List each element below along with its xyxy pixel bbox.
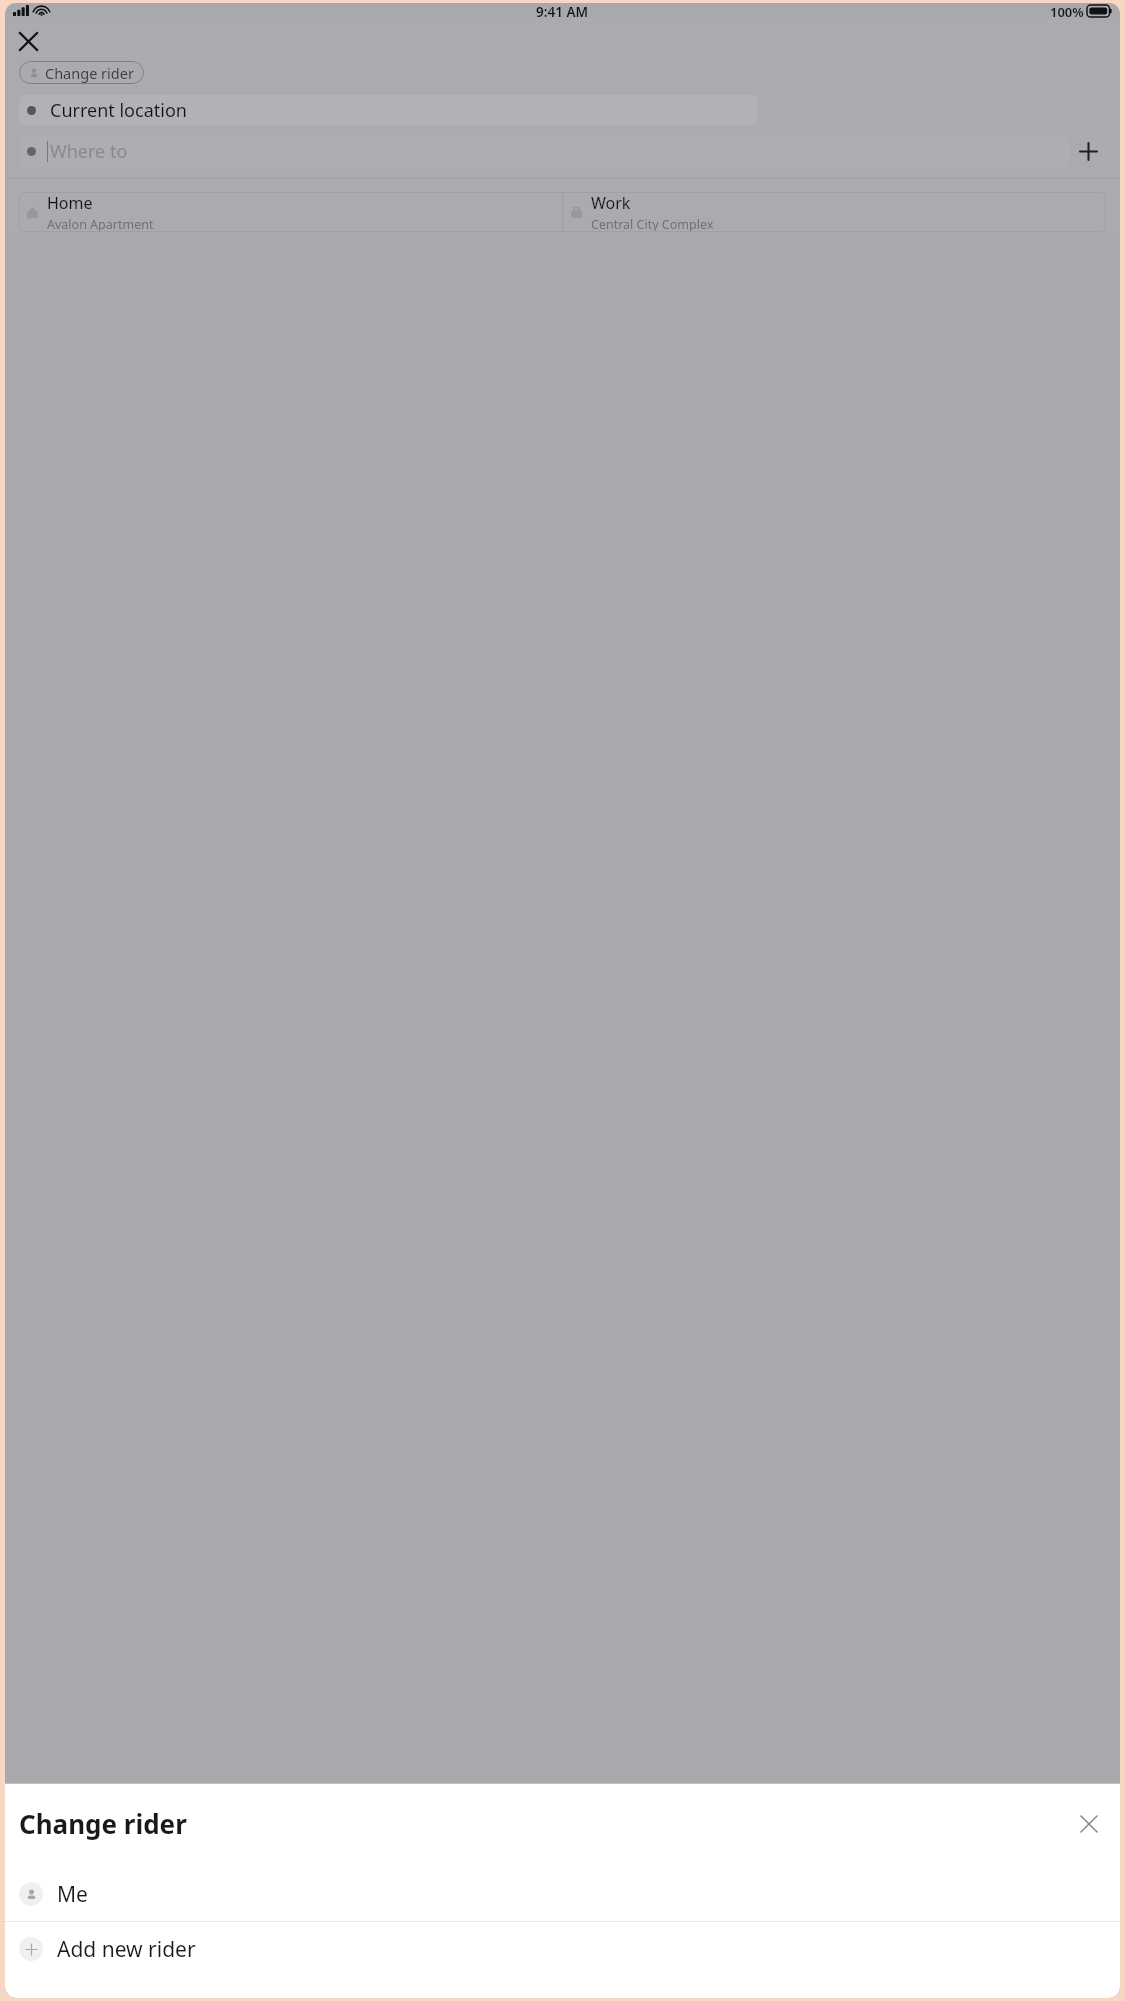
staticText: 9:41 AM	[536, 3, 589, 18]
staticText: Current location	[50, 98, 187, 123]
button[interactable]: Add new rider	[5, 1922, 1120, 1976]
staticText: Change rider	[19, 1806, 1072, 1841]
button[interactable]: Home	[19, 192, 562, 232]
button[interactable]: Change rider	[19, 61, 144, 84]
staticText: Where to	[50, 139, 128, 164]
button[interactable]: Work	[563, 192, 1106, 232]
staticText: Change rider	[45, 63, 134, 83]
staticText: Me	[57, 1880, 88, 1909]
button[interactable]: Me	[5, 1867, 1120, 1921]
staticText: Home	[47, 192, 93, 214]
staticText: Avalon Apartment	[47, 216, 154, 232]
button[interactable]: Close change rider	[1072, 1807, 1106, 1841]
button[interactable]: Where to	[19, 136, 1070, 167]
staticText: Add new rider	[57, 1935, 196, 1964]
button[interactable]: Current location	[19, 95, 758, 126]
button[interactable]: Add stop	[1070, 136, 1106, 167]
staticText: Work	[591, 192, 631, 214]
staticText: 100%	[1050, 3, 1084, 18]
staticText: Central City Complex	[591, 216, 714, 232]
button[interactable]: Close	[11, 24, 45, 58]
